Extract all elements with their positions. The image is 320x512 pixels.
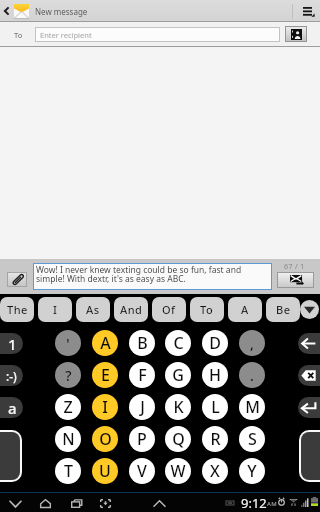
staticText: E	[101, 364, 110, 386]
staticText: I	[53, 302, 58, 317]
staticText: Q	[172, 428, 185, 450]
button[interactable]: More suggestions	[300, 300, 319, 319]
button[interactable]: Wow! I never knew texting could be so fu…	[33, 263, 272, 290]
staticText: a	[8, 398, 17, 418]
staticText: H	[209, 364, 221, 386]
staticText: 9:12	[241, 494, 267, 512]
button[interactable]: S	[239, 426, 265, 452]
button[interactable]: B	[129, 330, 155, 356]
staticText: G	[172, 364, 184, 386]
button[interactable]: Home	[36, 494, 54, 512]
staticText: Of	[162, 302, 176, 317]
button[interactable]: As	[76, 297, 110, 322]
button[interactable]: New message	[0, 0, 93, 22]
button[interactable]: Show notifications	[150, 494, 168, 512]
staticText: AM	[267, 500, 278, 508]
button[interactable]: Enter recipient	[35, 27, 280, 42]
staticText: Y	[247, 460, 257, 482]
button[interactable]: The	[0, 297, 34, 322]
button[interactable]: E	[92, 362, 118, 388]
staticText: D	[209, 332, 221, 354]
staticText: ?	[65, 366, 72, 385]
staticText: Be	[276, 302, 291, 317]
button[interactable]: R	[202, 426, 228, 452]
staticText: L	[211, 396, 220, 418]
button[interactable]: More options	[293, 0, 320, 22]
button[interactable]: J	[129, 394, 155, 420]
staticText: .	[250, 366, 254, 385]
staticText: To	[200, 302, 214, 317]
button[interactable]: Choose contact	[285, 26, 307, 42]
button[interactable]: Y	[239, 458, 265, 484]
staticText: Enter recipient	[40, 30, 92, 40]
button[interactable]: Send message	[277, 272, 314, 288]
button[interactable]: L	[202, 394, 228, 420]
button[interactable]: Be	[266, 297, 300, 322]
button[interactable]: F	[129, 362, 155, 388]
button[interactable]: A	[228, 297, 262, 322]
staticText: M	[245, 396, 260, 418]
staticText: U	[99, 460, 111, 482]
staticText: '	[66, 334, 70, 353]
button[interactable]: W	[165, 458, 191, 484]
button[interactable]: A	[92, 330, 118, 356]
staticText: S	[248, 428, 257, 450]
button[interactable]: C	[165, 330, 191, 356]
staticText: A	[241, 302, 249, 317]
staticText: X	[210, 460, 220, 482]
button[interactable]: ,	[239, 330, 265, 356]
button[interactable]: Of	[152, 297, 186, 322]
button[interactable]: Emoticons	[0, 365, 23, 386]
staticText: T	[64, 460, 73, 482]
button[interactable]: K	[165, 394, 191, 420]
button[interactable]: Space	[0, 432, 20, 480]
button[interactable]: I	[92, 394, 118, 420]
staticText: W	[170, 460, 186, 482]
button[interactable]: O	[92, 426, 118, 452]
button[interactable]: Numbers and symbols	[0, 333, 23, 354]
button[interactable]: Backspace	[298, 365, 320, 386]
button[interactable]: X	[202, 458, 228, 484]
button[interactable]: Z	[55, 394, 81, 420]
button[interactable]: Move left	[298, 333, 320, 354]
staticText: New message	[35, 6, 88, 17]
staticText: N	[62, 428, 75, 450]
staticText: The	[7, 302, 28, 317]
button[interactable]: D	[202, 330, 228, 356]
button[interactable]: V	[129, 458, 155, 484]
staticText: F	[138, 364, 147, 386]
button[interactable]: Attach	[7, 272, 27, 287]
button[interactable]: Q	[165, 426, 191, 452]
button[interactable]: Space	[301, 432, 320, 480]
button[interactable]: H	[202, 362, 228, 388]
button[interactable]: ?	[55, 362, 81, 388]
button[interactable]: Enter	[298, 397, 320, 418]
button[interactable]: U	[92, 458, 118, 484]
button[interactable]: I	[38, 297, 72, 322]
staticText: :-)	[6, 368, 17, 384]
button[interactable]: Hide keyboard	[96, 494, 114, 512]
button[interactable]: M	[239, 394, 265, 420]
button[interactable]: T	[55, 458, 81, 484]
staticText: V	[137, 460, 147, 482]
button[interactable]: '	[55, 330, 81, 356]
button[interactable]: P	[129, 426, 155, 452]
staticText: C	[173, 332, 184, 354]
staticText: And	[120, 302, 143, 317]
staticText: P	[137, 428, 147, 450]
button[interactable]: To	[190, 297, 224, 322]
staticText: A	[100, 332, 111, 354]
button[interactable]: .	[239, 362, 265, 388]
staticText: Wow! I never knew texting could be so fu…	[36, 264, 242, 285]
staticText: B	[137, 332, 148, 354]
button[interactable]: Shift to lower case	[0, 397, 23, 418]
button[interactable]: And	[114, 297, 148, 322]
button[interactable]: G	[165, 362, 191, 388]
staticText: K	[173, 396, 184, 418]
button[interactable]: Back	[6, 494, 24, 512]
button[interactable]: N	[55, 426, 81, 452]
staticText: I	[102, 396, 108, 418]
staticText: J	[140, 396, 145, 418]
staticText: As	[86, 302, 100, 317]
button[interactable]: Recent apps	[67, 494, 85, 512]
